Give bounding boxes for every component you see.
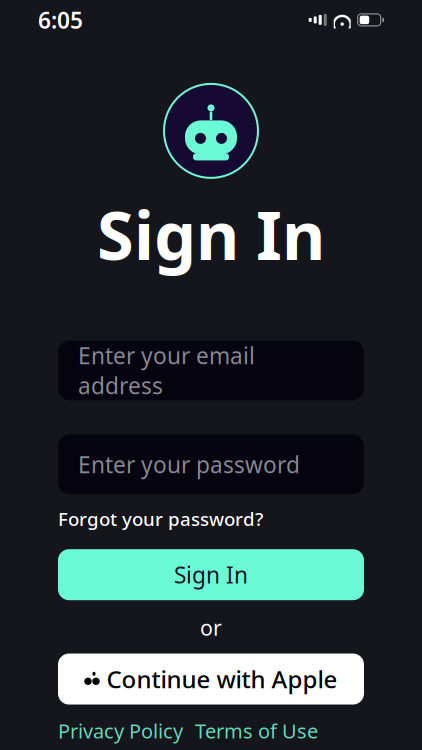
staticText: 6:05 xyxy=(38,5,83,35)
staticText: Privacy Policy xyxy=(58,717,183,744)
staticText: Forgot your password? xyxy=(58,506,263,531)
button[interactable]: Email address xyxy=(58,340,364,400)
staticText: Terms of Use xyxy=(195,717,318,744)
staticText: Continue with Apple xyxy=(106,663,337,695)
button[interactable]: Forgot your password? xyxy=(58,506,263,531)
staticText: Sign In xyxy=(174,560,248,590)
staticText: Enter your password xyxy=(78,449,300,479)
staticText: Sign In xyxy=(97,190,325,278)
button[interactable]: Terms of Use xyxy=(195,717,318,744)
button[interactable]: Continue with Apple xyxy=(58,653,364,704)
staticText: Enter your email address xyxy=(78,340,255,400)
button[interactable]: Privacy Policy xyxy=(58,717,183,744)
button[interactable]: Sign In xyxy=(58,549,364,600)
button[interactable]: Password xyxy=(58,434,364,494)
staticText: or xyxy=(200,613,222,641)
